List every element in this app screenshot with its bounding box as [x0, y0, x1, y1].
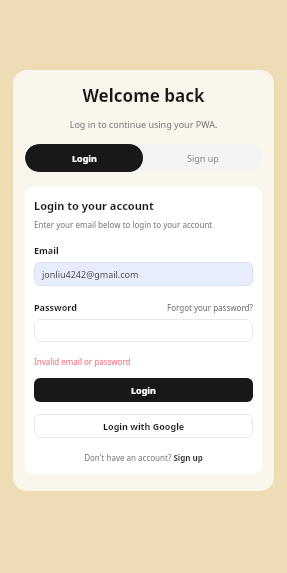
- staticText: Invalid email or password: [34, 356, 131, 367]
- staticText: Login to your account: [34, 198, 154, 213]
- button[interactable]: Login: [25, 144, 143, 172]
- staticText: Enter your email below to login to your …: [34, 219, 213, 230]
- button[interactable]: jonliu4242@gmail.com: [34, 262, 253, 286]
- staticText: Login: [72, 152, 97, 164]
- button[interactable]: Forgot your password?: [167, 302, 253, 313]
- staticText: Don't have an account? Sign up: [84, 452, 203, 463]
- staticText: Welcome back: [25, 84, 262, 107]
- button[interactable]: Don't have an account? Sign up: [34, 452, 253, 463]
- staticText: Password: [34, 301, 77, 313]
- button[interactable]: Login with Google: [34, 414, 253, 438]
- staticText: Email: [34, 244, 59, 256]
- button[interactable]: Sign up: [143, 144, 262, 172]
- staticText: Login: [131, 384, 156, 396]
- staticText: jonliu4242@gmail.com: [42, 268, 139, 280]
- button[interactable]: Login: [34, 378, 253, 402]
- button[interactable]: [34, 319, 253, 342]
- staticText: Sign up: [187, 152, 219, 164]
- staticText: Forgot your password?: [167, 302, 253, 313]
- staticText: Log in to continue using your PWA.: [25, 118, 262, 130]
- staticText: Login with Google: [103, 420, 185, 432]
